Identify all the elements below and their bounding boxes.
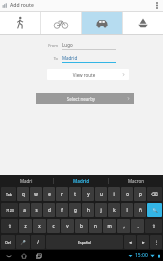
button[interactable]: ⇧ [145, 219, 162, 233]
button[interactable]: . [131, 219, 144, 233]
staticText: ⇧ [8, 224, 12, 229]
staticText: e [48, 191, 51, 197]
staticText: v [66, 223, 69, 229]
button[interactable]: ◂ [124, 235, 136, 249]
staticText: 🎤 [20, 240, 26, 245]
button[interactable]: Español [46, 235, 123, 249]
button[interactable]: ▸ [137, 235, 149, 249]
button[interactable]: x [33, 219, 46, 233]
staticText: w [34, 191, 38, 197]
button[interactable]: u [95, 187, 107, 201]
button[interactable]: k [108, 203, 120, 217]
button[interactable]: ⇧ [1, 219, 18, 233]
staticText: Español [78, 240, 91, 245]
staticText: d [48, 207, 51, 213]
button[interactable]: m [103, 219, 116, 233]
button[interactable]: a [19, 203, 30, 217]
staticText: g [74, 207, 77, 213]
staticText: h [87, 207, 90, 213]
staticText: View route [47, 72, 121, 78]
staticText: r [61, 191, 63, 197]
button[interactable]: l [121, 203, 133, 217]
button[interactable]: c [47, 219, 60, 233]
staticText: i [113, 191, 115, 197]
staticText: ◂ [129, 240, 132, 245]
staticText: q [22, 191, 25, 197]
button[interactable]: 🔍 [147, 203, 162, 217]
staticText: c [52, 223, 55, 229]
button[interactable]: Tab [1, 187, 16, 201]
button[interactable]: z [19, 219, 32, 233]
button[interactable]: f [56, 203, 68, 217]
button[interactable]: h [82, 203, 94, 217]
staticText: , [123, 223, 125, 229]
button[interactable]: Madrid [54, 175, 108, 186]
button[interactable]: , [117, 219, 130, 233]
staticText: t [74, 191, 76, 197]
button[interactable]: q [17, 187, 29, 201]
button[interactable]: Madri [0, 175, 53, 186]
staticText: Macron [128, 178, 145, 184]
button[interactable]: Home [19, 251, 29, 261]
staticText: y [87, 191, 90, 197]
button[interactable]: Back [4, 251, 14, 261]
button[interactable]: ñ [134, 203, 146, 217]
button[interactable]: / [31, 235, 45, 249]
button[interactable]: View route [47, 69, 129, 80]
button[interactable]: i [108, 187, 120, 201]
staticText: a [23, 207, 26, 213]
button[interactable]: v [61, 219, 74, 233]
staticText: f [61, 207, 63, 213]
staticText: 🔍 [152, 208, 158, 213]
button[interactable]: o [121, 187, 133, 201]
button[interactable]: Select nearby [36, 93, 134, 104]
button[interactable]: ⌫ [147, 187, 162, 201]
button[interactable]: Bike [41, 12, 81, 34]
staticText: Madri [20, 178, 33, 184]
staticText: n [94, 223, 97, 229]
button[interactable]: Boat [123, 12, 163, 34]
button[interactable]: d [43, 203, 55, 217]
button[interactable]: j [95, 203, 107, 217]
staticText: Select nearby [36, 96, 126, 102]
staticText: Madrid [62, 55, 78, 61]
button[interactable]: More options [151, 0, 163, 11]
staticText: ▸ [142, 240, 145, 245]
staticText: m [107, 223, 112, 229]
staticText: . [137, 223, 139, 229]
button[interactable]: ⋮ [150, 235, 162, 249]
button[interactable]: y [82, 187, 94, 201]
button[interactable]: Ctrl [1, 235, 15, 249]
button[interactable]: Lugo [62, 42, 116, 50]
button[interactable]: t [69, 187, 81, 201]
staticText: Madrid [73, 178, 89, 184]
staticText: Lugo [62, 42, 73, 48]
staticText: Tab [6, 192, 12, 197]
button[interactable]: ?123 [1, 203, 18, 217]
staticText: x [38, 223, 41, 229]
staticText: j [100, 207, 102, 213]
staticText: ⇧ [152, 224, 156, 229]
button[interactable]: Car [82, 12, 122, 34]
staticText: o [126, 191, 129, 197]
button[interactable]: r [56, 187, 68, 201]
staticText: p [139, 191, 142, 197]
button[interactable]: 🎤 [16, 235, 30, 249]
button[interactable]: p [134, 187, 146, 201]
button[interactable]: Madrid [62, 55, 116, 63]
staticText: ⋮ [154, 240, 159, 245]
button[interactable]: e [43, 187, 55, 201]
button[interactable]: n [89, 219, 102, 233]
button[interactable]: Walk [0, 12, 40, 34]
button[interactable]: Recents [34, 251, 44, 261]
staticText: Ctrl [5, 240, 11, 245]
button[interactable]: s [31, 203, 42, 217]
staticText: s [35, 207, 38, 213]
staticText: b [80, 223, 83, 229]
staticText: / [37, 239, 39, 245]
button[interactable]: w [30, 187, 42, 201]
button[interactable]: g [69, 203, 81, 217]
button[interactable]: Macron [109, 175, 163, 186]
staticText: From [44, 43, 58, 48]
button[interactable]: b [75, 219, 88, 233]
